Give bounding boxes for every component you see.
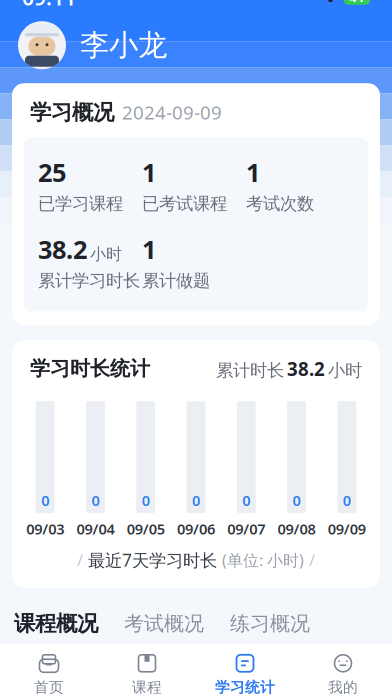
button[interactable]: 学习统计 [196, 650, 294, 696]
staticText: 09/06 [177, 519, 215, 539]
staticText: 学习时长统计 [30, 356, 150, 381]
staticText: (单位: 小时) [222, 549, 304, 571]
button[interactable]: 首页 [0, 650, 98, 696]
staticText: 0 [91, 491, 99, 510]
button[interactable]: 课程概况 [14, 605, 98, 643]
staticText: 课程 [132, 678, 162, 696]
staticText: 最近7天学习时长 [88, 549, 217, 572]
staticText: 09/05 [127, 519, 165, 539]
staticText: 1 [142, 155, 156, 189]
staticText: / [309, 549, 315, 571]
staticText: 小时 [90, 244, 122, 264]
staticText: 累计学习时长 [38, 270, 140, 291]
staticText: 09/03 [26, 519, 64, 539]
staticText: / [77, 549, 83, 571]
staticText: 0 [242, 491, 250, 510]
staticText: 我的 [328, 678, 358, 696]
staticText: 首页 [34, 678, 64, 696]
staticText: 09:11 [22, 0, 76, 11]
staticText: 考试概况 [124, 611, 204, 636]
staticText: 课程概况 [14, 611, 98, 637]
staticText: 0 [343, 491, 351, 510]
staticText: 已考试课程 [142, 193, 227, 214]
button[interactable]: 课程 [98, 650, 196, 696]
staticText: 09/08 [278, 519, 316, 539]
staticText: 2024-09-09 [122, 100, 222, 125]
staticText: 0 [293, 491, 301, 510]
staticText: 0 [41, 491, 49, 510]
staticText: 已学习课程 [38, 193, 123, 214]
staticText: 考试次数 [246, 193, 314, 214]
staticText: 0 [192, 491, 200, 510]
staticText: 38.2 [287, 356, 325, 381]
staticText: 累计时长 [216, 360, 284, 381]
staticText: 李小龙 [80, 27, 167, 63]
staticText: 25 [38, 155, 66, 189]
staticText: 1 [246, 155, 260, 189]
staticText: 09/07 [227, 519, 265, 539]
staticText: 学习概况 [30, 99, 114, 125]
staticText: 小时 [328, 360, 362, 381]
staticText: 41 [349, 0, 365, 6]
staticText: 38.2 [38, 232, 87, 266]
staticText: 1 [142, 232, 156, 266]
staticText: 练习概况 [230, 611, 310, 636]
staticText: 学习统计 [215, 678, 275, 696]
staticText: 09/09 [328, 519, 366, 539]
button[interactable]: 练习概况 [230, 605, 310, 642]
staticText: 累计做题 [142, 270, 210, 291]
button[interactable]: 我的 [294, 650, 392, 696]
staticText: 09/04 [76, 519, 114, 539]
button[interactable]: 考试概况 [124, 605, 204, 642]
staticText: 0 [142, 491, 150, 510]
